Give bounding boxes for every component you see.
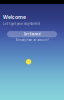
button[interactable]: Get Started <box>7 31 57 37</box>
staticText: Get Started <box>23 32 40 36</box>
staticText: Let's get your day started <box>3 22 40 26</box>
staticText: Welcome <box>3 13 26 20</box>
staticText: Already have an account? <box>15 38 48 42</box>
